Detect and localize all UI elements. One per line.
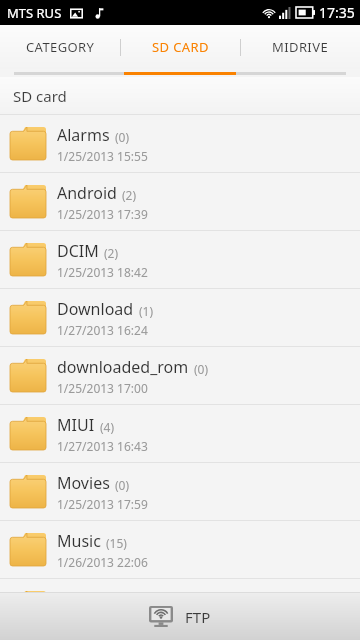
staticText: (2): [122, 187, 137, 203]
staticText: 1/25/2013 18:42: [57, 264, 148, 280]
staticText: MTS RUS: [7, 4, 62, 22]
staticText: SD CARD: [152, 38, 209, 56]
staticText: MIDRIVE: [272, 38, 329, 56]
staticText: Download: [57, 298, 134, 320]
button[interactable]: DCIM: [0, 231, 360, 288]
staticText: CATEGORY: [26, 38, 95, 56]
button[interactable]: SD CARD: [121, 25, 240, 69]
staticText: (0): [115, 129, 130, 145]
button[interactable]: Notifications: [0, 579, 360, 636]
staticText: (0): [158, 593, 173, 609]
staticText: SD card: [13, 86, 67, 106]
button[interactable]: Music: [0, 521, 360, 578]
staticText: Alarms: [57, 124, 110, 146]
staticText: (0): [194, 361, 209, 377]
button[interactable]: FTP: [149, 606, 211, 627]
button[interactable]: Movies: [0, 463, 360, 520]
staticText: (2): [104, 245, 119, 261]
staticText: 1/25/2013 17:59: [57, 496, 148, 512]
staticText: Notifications: [57, 588, 153, 610]
button[interactable]: Alarms: [0, 115, 360, 172]
button[interactable]: MIDRIVE: [241, 25, 360, 69]
button[interactable]: downloaded_rom: [0, 347, 360, 404]
staticText: 1/25/2013 17:00: [57, 380, 148, 396]
staticText: (4): [100, 419, 115, 435]
staticText: (15): [106, 535, 127, 551]
staticText: 1/27/2013 16:24: [57, 322, 148, 338]
staticText: (0): [115, 477, 130, 493]
staticText: Movies: [57, 472, 110, 494]
staticText: 1/27/2013 16:43: [57, 438, 148, 454]
staticText: Android: [57, 182, 117, 204]
staticText: Music: [57, 530, 101, 552]
staticText: MIUI: [57, 414, 95, 436]
button[interactable]: CATEGORY: [0, 25, 120, 69]
staticText: 1/26/2013 22:06: [57, 554, 148, 570]
staticText: downloaded_rom: [57, 356, 189, 378]
button[interactable]: Download: [0, 289, 360, 346]
button[interactable]: MIUI: [0, 405, 360, 462]
staticText: 17:35: [319, 3, 355, 22]
staticText: FTP: [185, 607, 211, 627]
staticText: DCIM: [57, 240, 99, 262]
staticText: 1/25/2013 17:39: [57, 206, 148, 222]
staticText: (1): [139, 303, 154, 319]
staticText: 1/25/2013 15:55: [57, 148, 148, 164]
button[interactable]: Android: [0, 173, 360, 230]
